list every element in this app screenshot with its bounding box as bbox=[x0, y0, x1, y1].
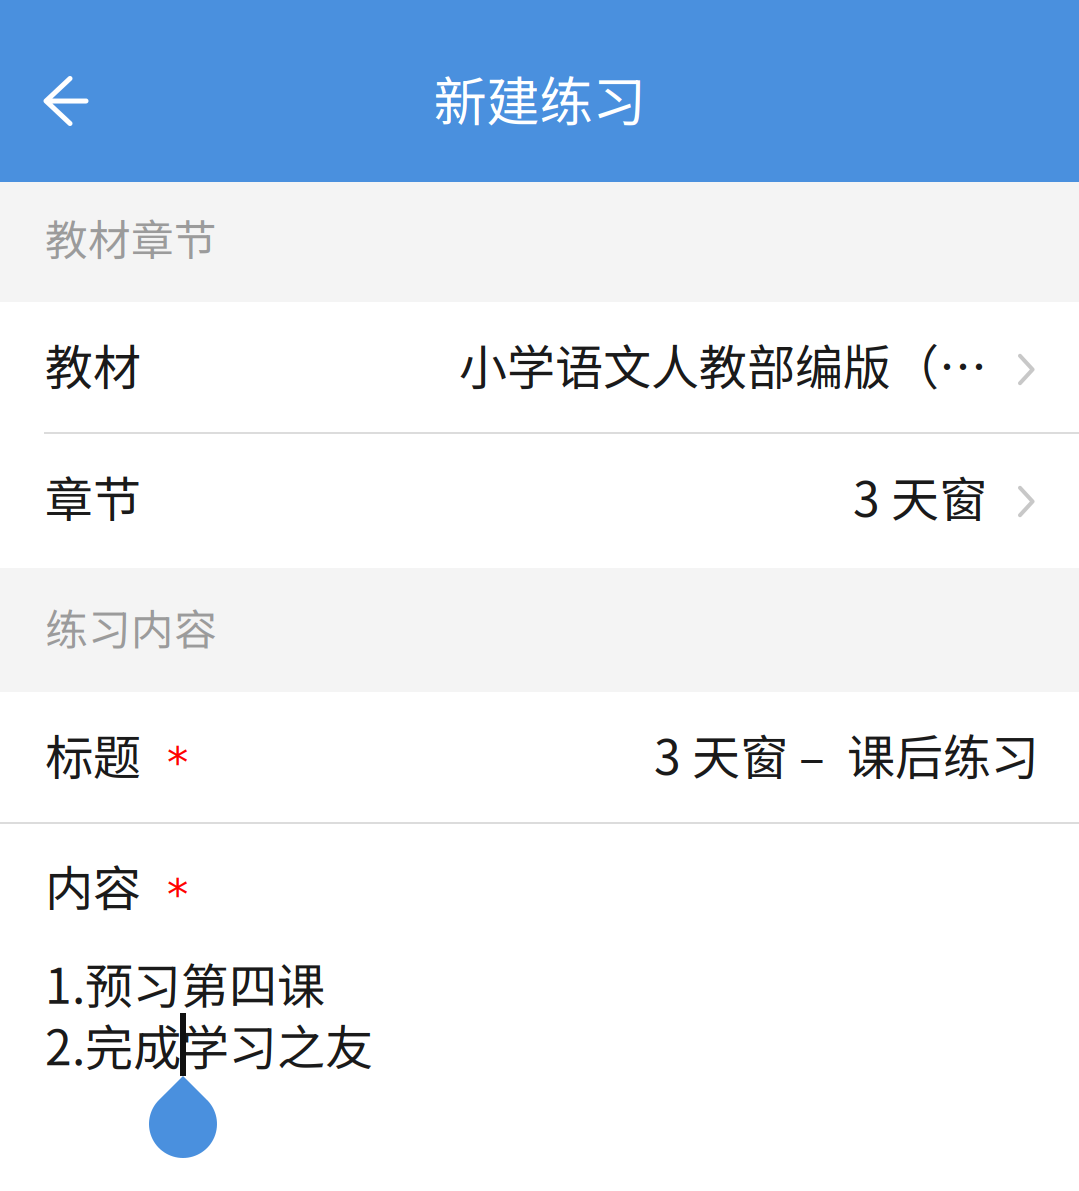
staticText: 小学语文人教部编版（… bbox=[459, 329, 987, 399]
button[interactable]: 章节 bbox=[0, 434, 1079, 568]
button[interactable]: Back bbox=[0, 0, 170, 182]
button[interactable]: 教材 bbox=[0, 302, 1079, 432]
button[interactable]: 标题 bbox=[0, 692, 1079, 822]
staticText: * bbox=[167, 870, 188, 919]
staticText: 1.预习第四课 bbox=[45, 948, 325, 1017]
staticText: 新建练习 bbox=[433, 59, 645, 137]
staticText: 教材 bbox=[45, 329, 141, 399]
staticText: * bbox=[167, 738, 188, 787]
button[interactable]: 内容 bbox=[0, 824, 1079, 1191]
staticText: 3 天窗 bbox=[853, 461, 987, 531]
staticText: 标题 bbox=[45, 719, 141, 789]
staticText: 2.完成学习之友 bbox=[45, 1009, 373, 1079]
staticText: 3 天窗 – 课后练习 bbox=[654, 719, 1039, 789]
staticText: 内容 bbox=[45, 850, 141, 920]
staticText: 练习内容 bbox=[45, 596, 217, 658]
staticText: 教材章节 bbox=[45, 207, 217, 268]
staticText: 章节 bbox=[45, 461, 141, 531]
